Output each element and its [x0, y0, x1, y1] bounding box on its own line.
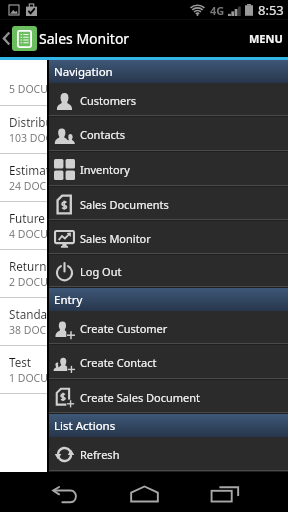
button[interactable]: Returns	[0, 250, 288, 297]
button[interactable]: MENU	[240, 20, 288, 57]
button[interactable]: Test	[0, 346, 288, 393]
staticText: Create Sales Document	[80, 390, 201, 405]
button[interactable]: Estimates	[0, 154, 288, 201]
staticText: Navigation	[54, 64, 113, 80]
button[interactable]: Navigate up	[2, 20, 11, 57]
button[interactable]: Create Sales Document	[49, 380, 288, 414]
button[interactable]: 5 DOCUMENTS	[0, 60, 288, 105]
staticText: 5 DOCUMENTS	[9, 82, 83, 96]
button[interactable]: Create Contact	[49, 345, 288, 380]
staticText: 38 DOCUMENTS	[9, 323, 89, 337]
button[interactable]: Sales Monitor	[49, 221, 288, 255]
staticText: Contacts	[80, 127, 126, 142]
staticText: 4G	[210, 3, 225, 18]
button[interactable]: Contacts	[49, 117, 288, 152]
staticText: Future Orders	[9, 210, 86, 226]
button[interactable]: Refresh	[49, 437, 288, 472]
button[interactable]: Distribution	[0, 106, 288, 153]
button[interactable]: Log Out	[49, 255, 288, 288]
staticText: Sales Monitor	[80, 231, 151, 246]
staticText: Standard	[9, 306, 59, 322]
button[interactable]: Home	[120, 474, 168, 512]
button[interactable]: Sales Documents	[49, 187, 288, 221]
staticText: Create Customer	[80, 321, 168, 336]
staticText: Sales Monitor	[39, 29, 130, 48]
staticText: 1 DOCUMENT	[9, 371, 78, 385]
button[interactable]: Inventory	[49, 152, 288, 187]
staticText: Sales Documents	[80, 197, 169, 212]
staticText: Returns	[9, 258, 52, 274]
button[interactable]: Standard	[0, 298, 288, 345]
button[interactable]: Customers	[49, 83, 288, 117]
staticText: Customers	[80, 93, 136, 108]
staticText: Create Contact	[80, 355, 157, 370]
staticText: MENU	[249, 31, 283, 46]
staticText: Entry	[54, 292, 83, 308]
staticText: Inventory	[80, 162, 130, 177]
button[interactable]: Back	[40, 475, 88, 512]
staticText: Test	[9, 354, 32, 370]
staticText: Estimates	[9, 162, 63, 178]
button[interactable]: Create Customer	[49, 311, 288, 345]
staticText: 103 DOCUMENTS	[9, 131, 95, 145]
staticText: 4 DOCUMENTS	[9, 227, 83, 241]
staticText: Distribution	[9, 114, 75, 130]
staticText: 2 DOCUMENTS	[9, 275, 83, 289]
staticText: Refresh	[80, 447, 120, 462]
staticText: 24 DOCUMENTS	[9, 179, 89, 193]
button[interactable]: Future Orders	[0, 202, 288, 249]
staticText: 8:53	[258, 1, 284, 19]
button[interactable]: Recent apps	[201, 474, 249, 512]
staticText: Log Out	[80, 264, 122, 279]
staticText: List Actions	[54, 418, 116, 434]
